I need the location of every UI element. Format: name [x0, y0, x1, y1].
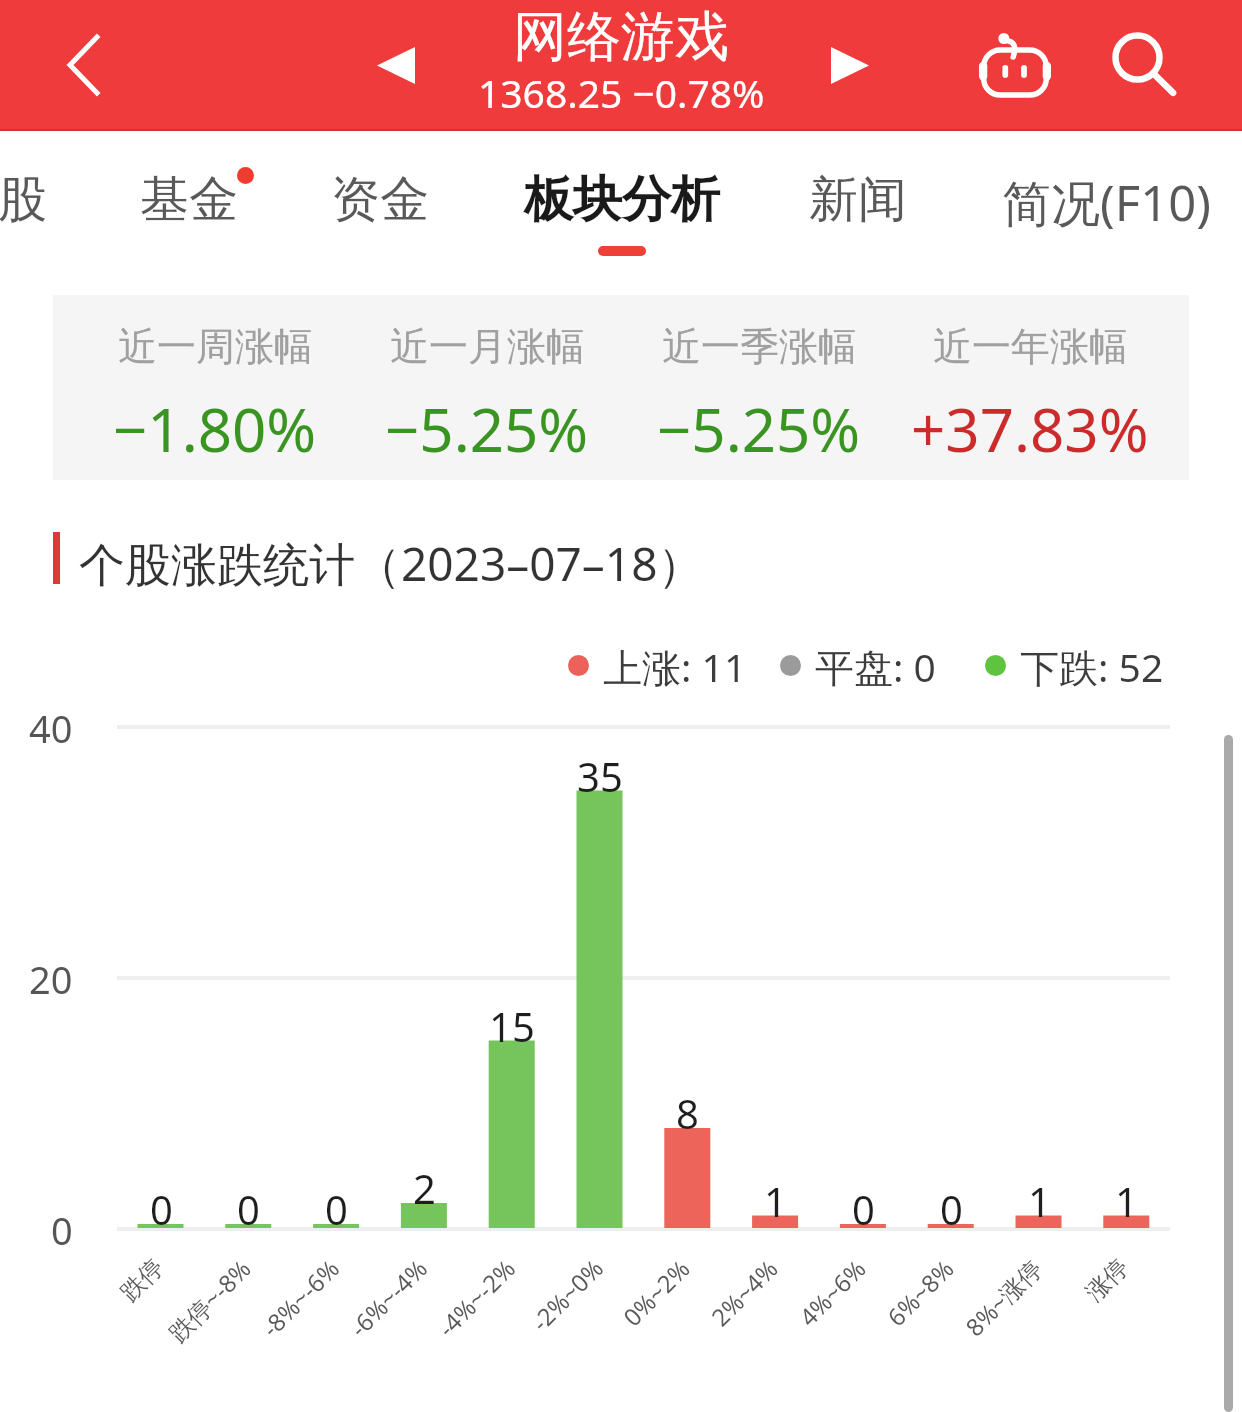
- button[interactable]: AI assistant: [965, 22, 1065, 108]
- staticText: 2%~4%: [704, 1252, 785, 1333]
- button[interactable]: 上涨: 11: [568, 640, 747, 690]
- button[interactable]: 下跌: 52: [985, 640, 1164, 690]
- staticText: 近一月涨幅: [390, 322, 585, 371]
- staticText: -6%~-4%: [342, 1252, 434, 1344]
- staticText: 近一周涨幅: [118, 322, 313, 371]
- staticText: 0: [237, 1182, 260, 1236]
- button[interactable]: 基金: [99, 131, 279, 272]
- button[interactable]: 近一年涨幅: [890, 295, 1170, 480]
- staticText: 1: [764, 1174, 787, 1228]
- staticText: 1: [1115, 1174, 1138, 1228]
- button[interactable]: 新闻: [758, 131, 958, 272]
- staticText: 跌停~-8%: [161, 1252, 258, 1349]
- staticText: 平盘: 0: [815, 640, 936, 690]
- staticText: 近一年涨幅: [933, 322, 1128, 371]
- button[interactable]: 简况(F10): [966, 131, 1242, 272]
- button[interactable]: 近一月涨幅: [347, 295, 627, 480]
- staticText: 15: [489, 999, 535, 1053]
- staticText: −5.25%: [385, 388, 589, 470]
- button[interactable]: Previous sector: [358, 30, 434, 100]
- staticText: 8: [676, 1086, 699, 1140]
- staticText: 1: [1028, 1174, 1051, 1228]
- staticText: 0: [51, 1204, 73, 1256]
- staticText: 35: [577, 749, 623, 803]
- staticText: 网络游戏: [513, 3, 729, 71]
- staticText: 1368.25 −0.78%: [478, 66, 765, 119]
- staticText: 上涨: 11: [603, 640, 747, 690]
- button[interactable]: 近一周涨幅: [75, 295, 355, 480]
- button[interactable]: 资金: [285, 131, 475, 272]
- staticText: 0: [325, 1182, 348, 1236]
- staticText: 0: [852, 1182, 875, 1236]
- staticText: −5.25%: [657, 388, 861, 470]
- button[interactable]: Search: [1098, 22, 1190, 108]
- staticText: -8%~-6%: [254, 1252, 346, 1344]
- staticText: 20: [29, 953, 73, 1005]
- staticText: 基金: [140, 169, 238, 231]
- staticText: -4%~-2%: [430, 1252, 522, 1344]
- button[interactable]: 平盘: 0: [780, 640, 936, 690]
- staticText: 0: [150, 1182, 173, 1236]
- staticText: 近一季涨幅: [662, 322, 857, 371]
- staticText: 涨停: [1079, 1252, 1135, 1308]
- staticText: 6%~8%: [880, 1252, 961, 1333]
- staticText: −1.80%: [113, 388, 317, 470]
- staticText: 股: [0, 169, 47, 231]
- staticText: 新闻: [809, 169, 907, 231]
- staticText: 跌停: [114, 1252, 170, 1308]
- staticText: 40: [29, 702, 73, 754]
- staticText: 8%~涨停: [958, 1252, 1049, 1343]
- staticText: 0%~2%: [616, 1252, 697, 1333]
- staticText: 下跌: 52: [1020, 640, 1164, 690]
- staticText: 个股涨跌统计（2023–07–18）: [79, 532, 704, 595]
- staticText: 2: [413, 1161, 436, 1215]
- staticText: 板块分析: [524, 169, 720, 231]
- staticText: -2%~0%: [524, 1252, 610, 1338]
- staticText: 资金: [331, 169, 429, 231]
- staticText: +37.83%: [911, 388, 1149, 470]
- button[interactable]: Back: [46, 22, 120, 108]
- staticText: 简况(F10): [1002, 169, 1211, 236]
- staticText: 0: [940, 1182, 963, 1236]
- staticText: 4%~6%: [792, 1252, 873, 1333]
- button[interactable]: 板块分析: [497, 131, 747, 272]
- button[interactable]: 股: [0, 131, 102, 272]
- button[interactable]: Next sector: [812, 30, 888, 100]
- button[interactable]: 近一季涨幅: [619, 295, 899, 480]
